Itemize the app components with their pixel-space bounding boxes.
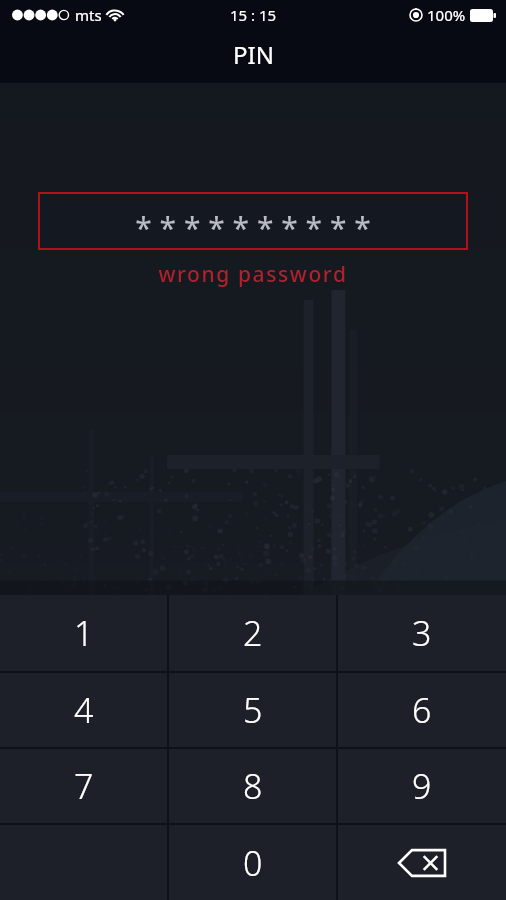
staticText: 4 [74,687,94,733]
button[interactable]: * * * * * * * * * * [38,192,468,250]
staticText: mts [75,5,102,25]
staticText: 15 : 15 [230,5,277,25]
staticText: 7 [74,763,94,809]
button[interactable]: 5 [169,673,336,747]
staticText: 3 [412,610,432,656]
button[interactable]: Backspace [338,825,506,900]
staticText: 0 [243,840,263,886]
staticText: * * * * * * * * * * [135,207,371,248]
button[interactable]: 1 [0,595,167,671]
staticText: 6 [412,687,432,733]
staticText: 8 [243,763,263,809]
button[interactable]: 4 [0,673,167,747]
staticText: 5 [243,687,263,733]
staticText: 1 [74,610,94,656]
button[interactable]: 8 [169,749,336,823]
staticText: 2 [243,610,263,656]
staticText: wrong password [0,260,506,289]
button[interactable]: 3 [338,595,506,671]
staticText: 9 [412,763,432,809]
button[interactable]: 6 [338,673,506,747]
staticText: 100% [427,5,466,25]
button[interactable]: 9 [338,749,506,823]
button[interactable]: 2 [169,595,336,671]
button[interactable]: 7 [0,749,167,823]
button[interactable]: 0 [169,825,336,900]
staticText: PIN [233,38,274,71]
